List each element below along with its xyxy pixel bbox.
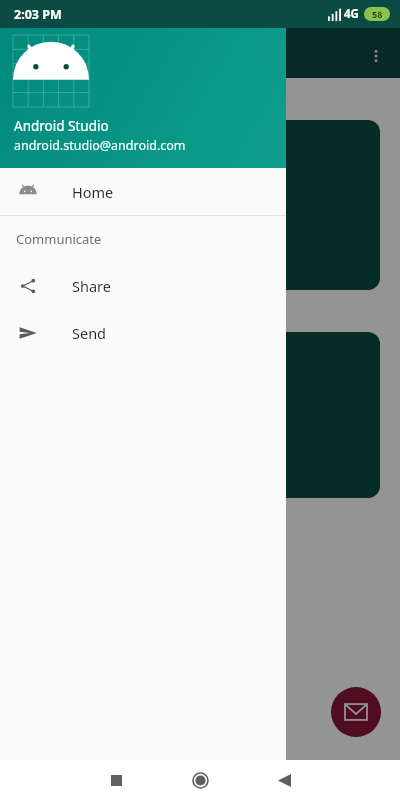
button[interactable]: More options xyxy=(362,42,390,70)
staticText: 4G xyxy=(344,6,359,22)
staticText: 58 xyxy=(372,8,383,20)
staticText: Android Studio xyxy=(14,117,109,135)
staticText: Share xyxy=(72,276,111,296)
button[interactable]: Recents xyxy=(88,760,144,800)
button[interactable]: Send xyxy=(0,309,286,356)
button[interactable]: Home xyxy=(172,760,228,800)
button[interactable]: Compose mail xyxy=(331,687,381,737)
staticText: android.studio@android.com xyxy=(14,137,186,154)
button[interactable]: Share xyxy=(0,262,286,309)
staticText: 2:03 PM xyxy=(14,6,62,23)
staticText: Send xyxy=(72,323,107,343)
staticText: Home xyxy=(72,182,114,202)
staticText: Physics xyxy=(154,188,250,223)
button[interactable]: Math xyxy=(24,332,380,498)
staticText: Communicate xyxy=(16,230,102,248)
button[interactable]: Home xyxy=(0,168,286,215)
button[interactable]: Back xyxy=(256,760,312,800)
button[interactable]: Physics xyxy=(24,120,380,290)
